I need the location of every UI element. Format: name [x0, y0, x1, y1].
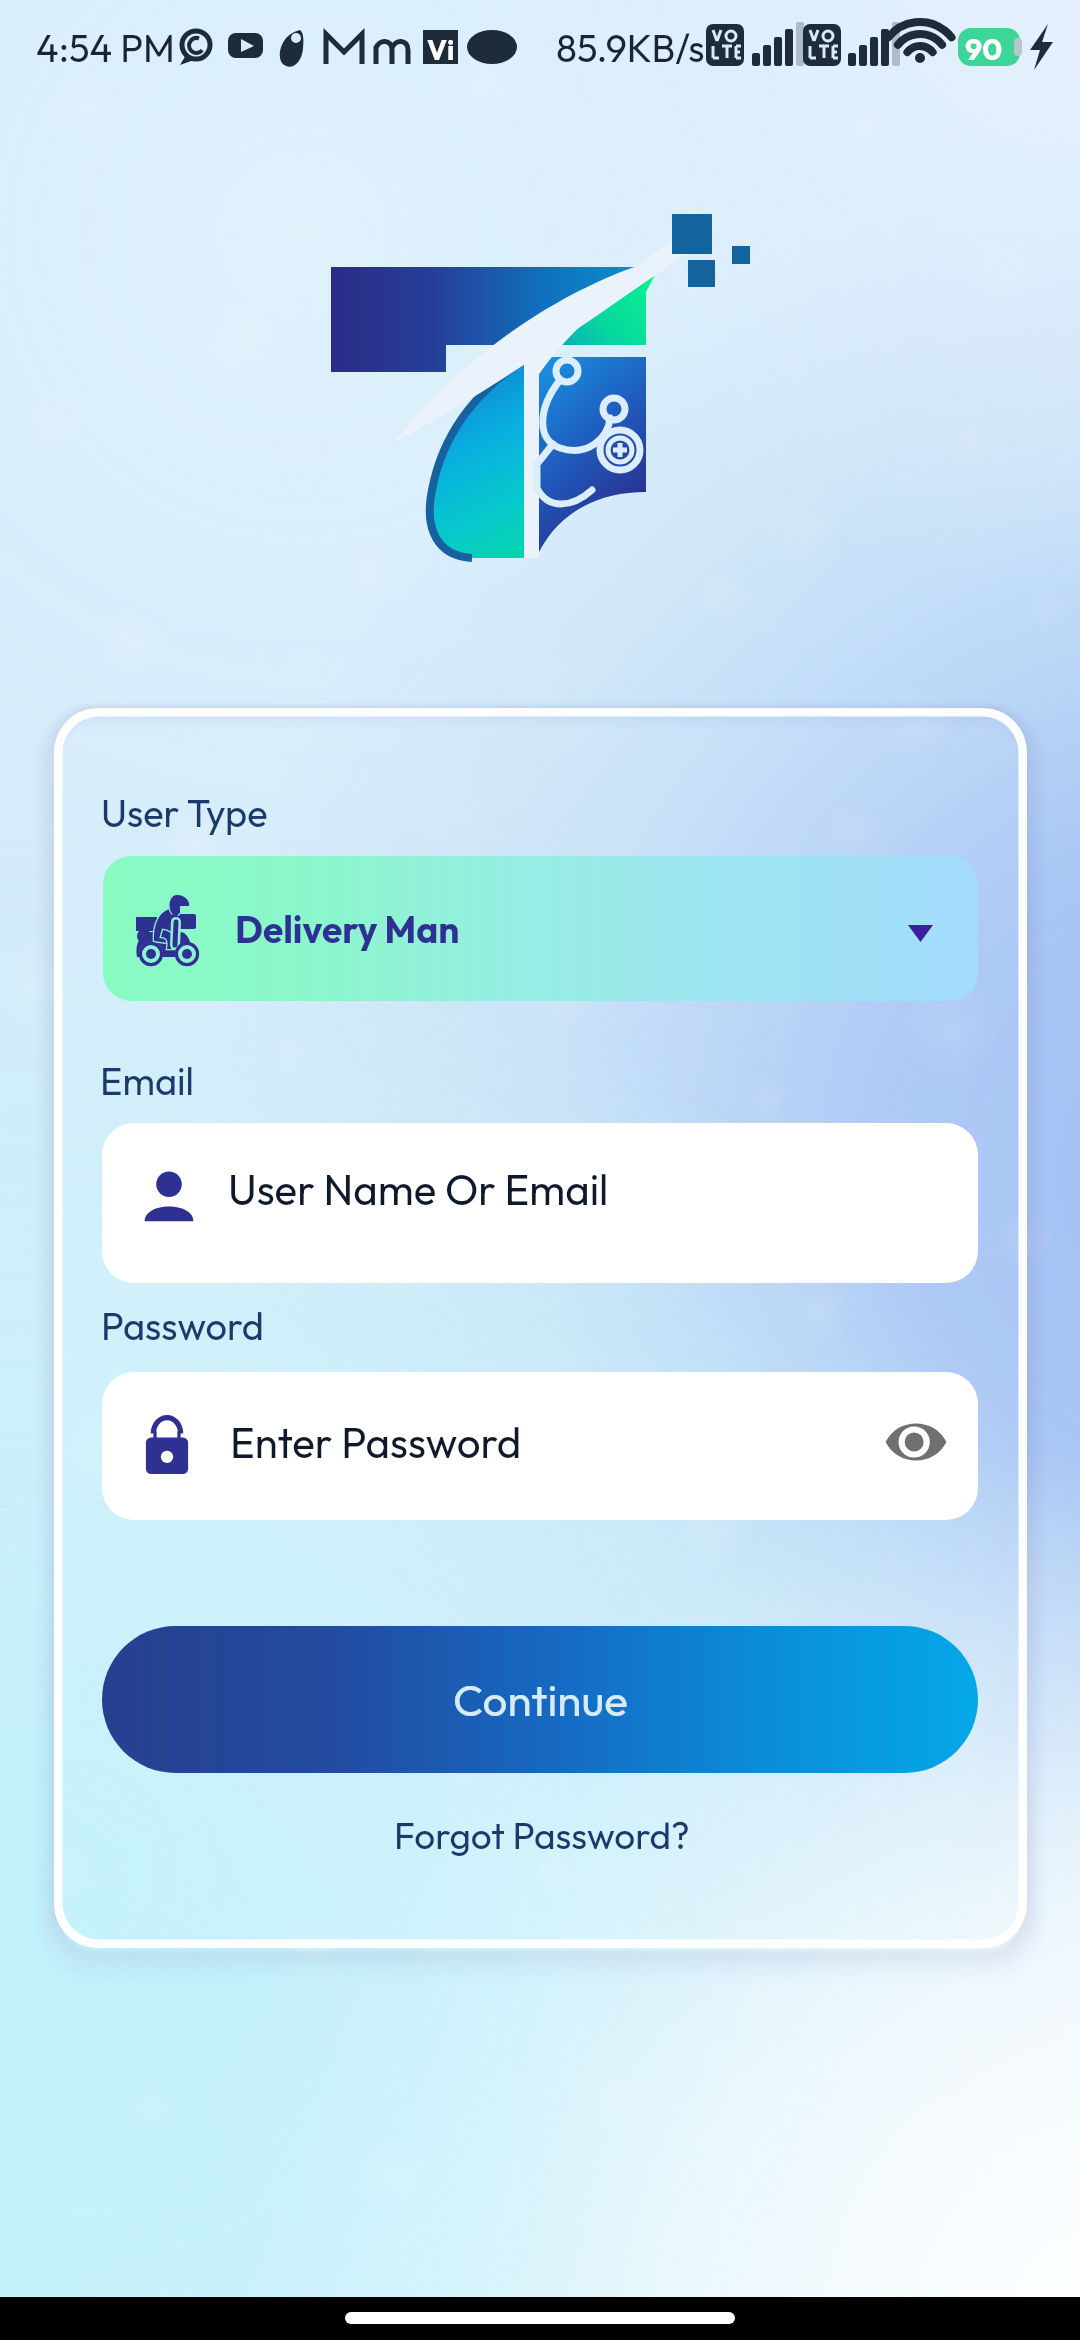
button[interactable]: Forgot Password?	[332, 1800, 752, 1870]
staticText: Delivery Man	[235, 906, 460, 953]
staticText: 90	[965, 30, 1003, 68]
staticText: User Type	[101, 789, 268, 837]
staticText: 85.9KB/s	[556, 24, 705, 72]
staticText: Email	[100, 1057, 194, 1105]
button[interactable]: Continue	[102, 1626, 978, 1773]
staticText: Vi	[427, 32, 455, 67]
button[interactable]: Show password	[864, 1400, 956, 1492]
staticText: User Name Or Email	[228, 1163, 609, 1216]
button[interactable]: User Name Or Email	[102, 1123, 978, 1283]
button[interactable]: Delivery Man	[103, 856, 978, 1001]
staticText: Password	[101, 1302, 264, 1350]
staticText: Forgot Password?	[394, 1812, 690, 1859]
staticText: Continue	[453, 1672, 628, 1727]
staticText: 4:54 PM	[36, 24, 175, 72]
staticText: Enter Password	[230, 1416, 522, 1469]
button[interactable]: Enter Password	[102, 1372, 978, 1520]
